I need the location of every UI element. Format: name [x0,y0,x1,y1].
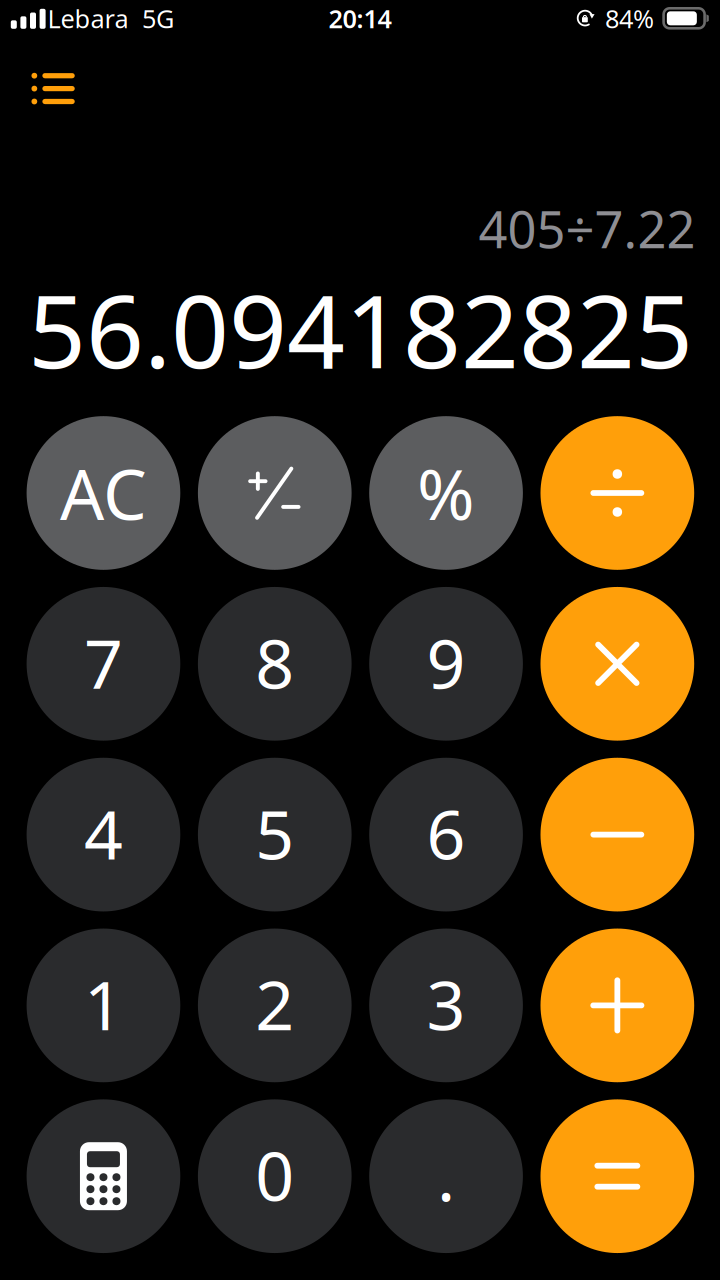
button[interactable]: Plus [540,928,694,1082]
staticText: 3 [426,959,465,1049]
button[interactable]: Minus [540,758,694,911]
button[interactable]: 3 [369,928,523,1082]
staticText: 7 [84,617,123,707]
button[interactable]: . [369,1099,523,1253]
button[interactable]: History [10,52,96,126]
staticText: Lebara [47,2,128,35]
button[interactable]: 0 [198,1099,352,1253]
button[interactable]: 4 [27,758,180,911]
staticText: 405÷7.22 [478,195,695,262]
button[interactable]: 7 [27,587,180,741]
button[interactable]: Plus or minus [198,416,352,570]
staticText: 5 [255,788,294,878]
button[interactable]: % [369,416,523,570]
staticText: 6 [426,788,465,878]
button[interactable]: 6 [369,758,523,911]
button[interactable]: Calculator [27,1099,180,1253]
button[interactable]: Multiply [540,587,694,741]
button[interactable]: 8 [198,587,352,741]
button[interactable]: Divide [540,416,694,570]
staticText: AC [60,447,147,539]
staticText: 9 [426,617,465,707]
button[interactable]: AC [27,416,180,570]
button[interactable]: 5 [198,758,352,911]
staticText: 1 [84,959,123,1049]
button[interactable]: 9 [369,587,523,741]
staticText: 20:14 [328,2,391,35]
button[interactable]: Equals [540,1099,694,1253]
staticText: 8 [255,617,294,707]
button[interactable]: 1 [27,928,180,1082]
staticText: 56.094182825 [28,262,693,396]
staticText: 5G [142,2,174,35]
button[interactable]: 2 [198,928,352,1082]
staticText: 2 [255,959,294,1049]
staticText: % [417,447,475,539]
staticText: 4 [84,788,123,878]
staticText: 84% [605,2,654,35]
staticText: . [437,1130,455,1220]
staticText: 0 [255,1129,294,1220]
